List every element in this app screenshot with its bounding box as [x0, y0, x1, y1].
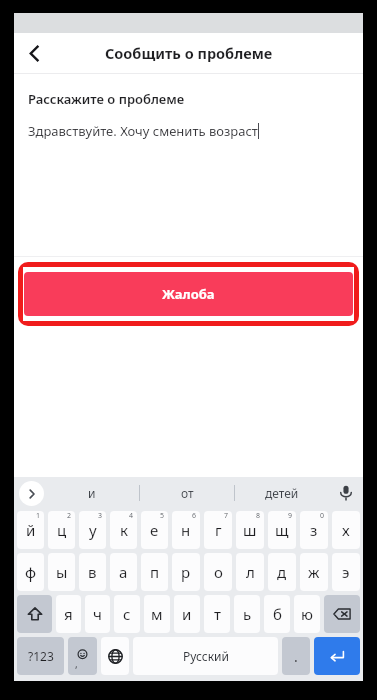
- button[interactable]: детей: [235, 477, 329, 509]
- button[interactable]: х: [332, 511, 360, 549]
- staticText: Расскажите о проблеме: [28, 90, 185, 108]
- staticText: 9: [288, 511, 293, 521]
- staticText: 0: [320, 511, 325, 521]
- button[interactable]: Back: [17, 36, 51, 70]
- button[interactable]: е: [141, 511, 168, 549]
- button[interactable]: Shift: [17, 595, 52, 633]
- staticText: 3: [98, 511, 103, 521]
- button[interactable]: Enter: [314, 637, 360, 675]
- staticText: щ: [275, 520, 289, 540]
- button[interactable]: Voice input: [329, 477, 363, 509]
- button[interactable]: щ: [268, 511, 296, 549]
- staticText: ,: [75, 657, 78, 671]
- staticText: г: [215, 520, 222, 540]
- staticText: у: [89, 520, 97, 540]
- button[interactable]: Backspace: [324, 595, 360, 633]
- staticText: т: [214, 604, 221, 624]
- staticText: з: [310, 520, 318, 540]
- staticText: с: [123, 604, 131, 624]
- staticText: 6: [192, 511, 197, 521]
- button[interactable]: ж: [300, 553, 328, 591]
- button[interactable]: .: [282, 637, 310, 675]
- staticText: н: [181, 520, 191, 540]
- staticText: и: [88, 485, 96, 501]
- button[interactable]: ь: [234, 595, 260, 633]
- staticText: в: [88, 562, 97, 582]
- staticText: ?123: [28, 648, 54, 664]
- staticText: е: [150, 520, 159, 540]
- button[interactable]: р: [172, 553, 200, 591]
- staticText: ж: [308, 562, 320, 582]
- button[interactable]: з: [300, 511, 328, 549]
- button[interactable]: ц: [48, 511, 75, 549]
- staticText: 4: [129, 511, 134, 521]
- staticText: ц: [57, 520, 67, 540]
- staticText: ь: [243, 604, 252, 624]
- staticText: Русский: [183, 648, 229, 664]
- staticText: Жалоба: [162, 285, 215, 303]
- button[interactable]: от: [140, 477, 234, 509]
- button[interactable]: б: [264, 595, 290, 633]
- staticText: и: [182, 604, 192, 624]
- staticText: л: [246, 562, 255, 582]
- button[interactable]: л: [236, 553, 264, 591]
- button[interactable]: More suggestions: [19, 481, 44, 506]
- staticText: 2: [67, 511, 72, 521]
- staticText: .: [294, 647, 298, 666]
- button[interactable]: и: [44, 477, 139, 509]
- button[interactable]: а: [110, 553, 137, 591]
- button[interactable]: ш: [236, 511, 264, 549]
- staticText: р: [181, 562, 191, 582]
- button[interactable]: Русский: [133, 637, 278, 675]
- button[interactable]: к: [110, 511, 137, 549]
- button[interactable]: г: [204, 511, 232, 549]
- staticText: ч: [93, 604, 102, 624]
- button[interactable]: н: [172, 511, 200, 549]
- staticText: Здравствуйте. Хочу сменить возраст: [28, 122, 258, 140]
- staticText: 1: [36, 511, 41, 521]
- button[interactable]: я: [56, 595, 81, 633]
- button[interactable]: э: [332, 553, 360, 591]
- staticText: а: [119, 562, 128, 582]
- button[interactable]: ч: [85, 595, 110, 633]
- staticText: 7: [224, 511, 229, 521]
- button[interactable]: ю: [294, 595, 320, 633]
- staticText: й: [26, 520, 36, 540]
- button[interactable]: у: [79, 511, 106, 549]
- button[interactable]: Change language: [101, 637, 129, 675]
- staticText: детей: [265, 485, 299, 501]
- button[interactable]: м: [144, 595, 170, 633]
- staticText: 5: [160, 511, 165, 521]
- staticText: от: [181, 485, 194, 501]
- button[interactable]: й: [17, 511, 44, 549]
- staticText: д: [277, 562, 287, 582]
- staticText: п: [150, 562, 160, 582]
- staticText: о: [214, 562, 223, 582]
- staticText: ф: [25, 562, 37, 582]
- button[interactable]: т: [204, 595, 230, 633]
- button[interactable]: Жалоба: [24, 272, 353, 316]
- button[interactable]: Emoji: [68, 637, 97, 675]
- staticText: э: [342, 562, 350, 582]
- staticText: ю: [301, 604, 313, 624]
- staticText: б: [273, 604, 282, 624]
- button[interactable]: ф: [17, 553, 44, 591]
- staticText: я: [64, 604, 73, 624]
- button[interactable]: о: [204, 553, 232, 591]
- staticText: к: [120, 520, 128, 540]
- button[interactable]: с: [114, 595, 140, 633]
- button[interactable]: в: [79, 553, 106, 591]
- staticText: ы: [56, 562, 68, 582]
- button[interactable]: д: [268, 553, 296, 591]
- button[interactable]: ?123: [17, 637, 64, 675]
- staticText: м: [151, 604, 163, 624]
- staticText: х: [342, 520, 350, 540]
- button[interactable]: ы: [48, 553, 75, 591]
- staticText: 8: [256, 511, 261, 521]
- staticText: Сообщить о проблеме: [105, 43, 273, 63]
- button[interactable]: п: [141, 553, 168, 591]
- button[interactable]: и: [174, 595, 200, 633]
- staticText: ш: [243, 520, 257, 540]
